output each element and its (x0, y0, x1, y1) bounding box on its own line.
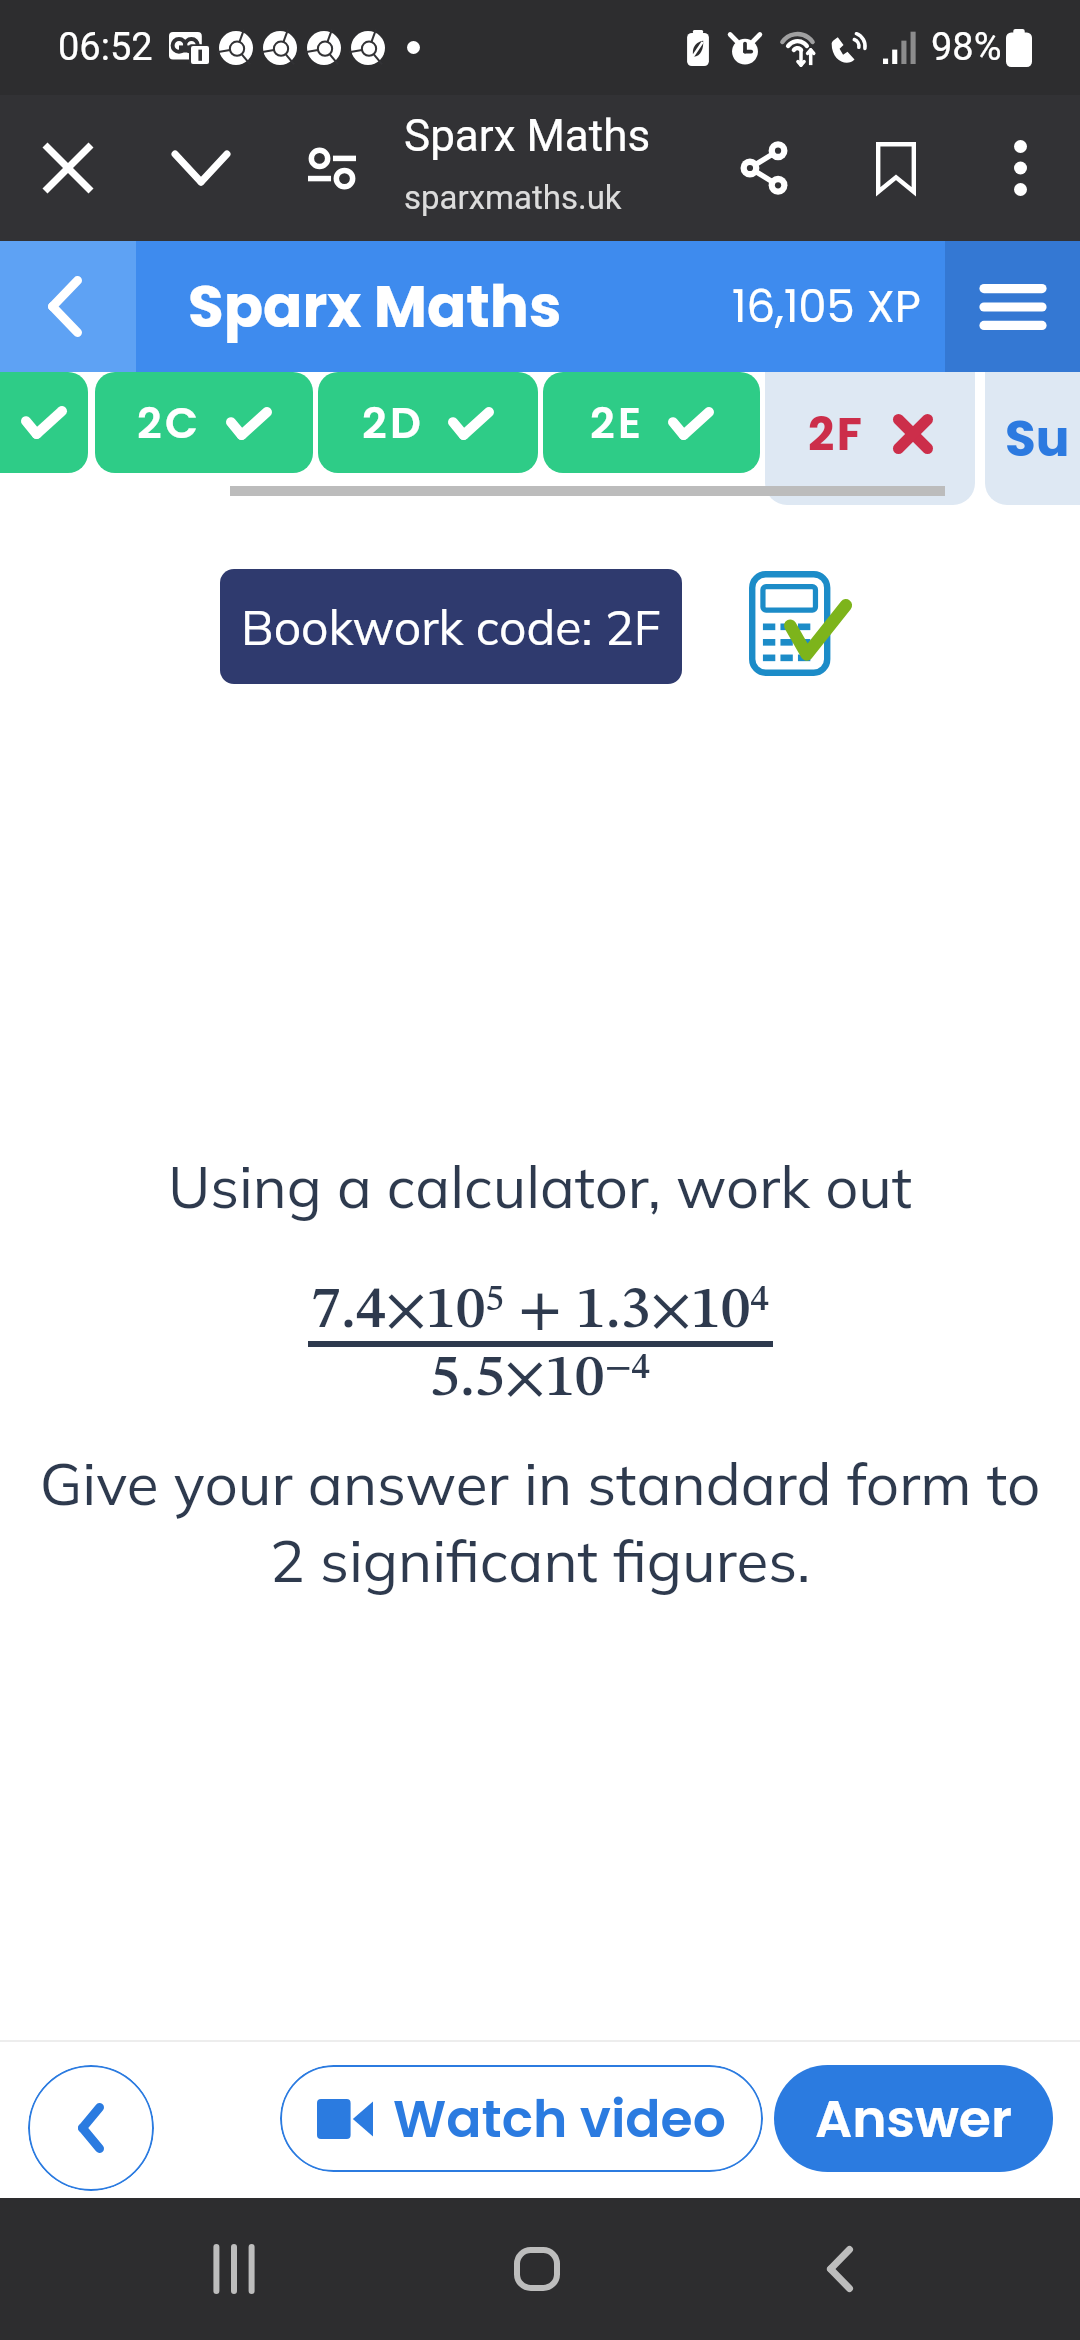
staticText: Using a calculator, work out (0, 1150, 1080, 1223)
staticText: Sparx Maths (404, 110, 651, 162)
staticText: 98% (931, 25, 1002, 70)
button[interactable]: Recent apps (164, 2198, 304, 2340)
button[interactable]: Bookwork code: 2F (220, 569, 682, 684)
staticText: 2D (362, 393, 424, 453)
staticText: 2F (808, 402, 865, 466)
staticText: Give your answer in standard form to 2 s… (0, 1446, 1080, 1596)
button[interactable]: 2C (95, 372, 313, 473)
button[interactable]: Menu (945, 241, 1080, 372)
button[interactable]: Home (467, 2198, 607, 2340)
button[interactable]: 2E (543, 372, 760, 473)
staticText: 5.5×10−4 (430, 1349, 650, 1409)
button[interactable]: Back (770, 2198, 910, 2340)
staticText: Watch video (393, 2082, 726, 2155)
staticText: sparxmaths.uk (404, 178, 622, 217)
staticText: 2C (137, 393, 202, 453)
button[interactable]: Watch video (280, 2065, 763, 2172)
staticText: Answer (815, 2082, 1012, 2155)
button[interactable]: Share (696, 95, 832, 241)
button[interactable]: 2F (765, 372, 975, 505)
button[interactable]: Bookmark (832, 95, 960, 241)
staticText: 16,105 XP (732, 275, 921, 338)
staticText: Sparx Maths (188, 266, 562, 347)
staticText: 06:52 (58, 25, 153, 70)
button[interactable]: Site settings (266, 95, 398, 241)
button[interactable]: Close (0, 95, 136, 241)
button[interactable]: 2D (318, 372, 538, 473)
button[interactable]: Su (985, 372, 1080, 505)
button[interactable]: Previous question (28, 2065, 154, 2191)
button[interactable]: More options (960, 95, 1080, 241)
button[interactable]: Answer (774, 2065, 1053, 2172)
staticText: 2E (590, 393, 644, 453)
button[interactable]: Expand (136, 95, 266, 241)
staticText: Su (1005, 404, 1070, 474)
staticText: 7.4×105 + 1.3×104 (311, 1281, 769, 1341)
staticText: Bookwork code: 2F (241, 597, 661, 657)
button[interactable] (0, 372, 88, 473)
button[interactable]: Back (0, 241, 136, 372)
